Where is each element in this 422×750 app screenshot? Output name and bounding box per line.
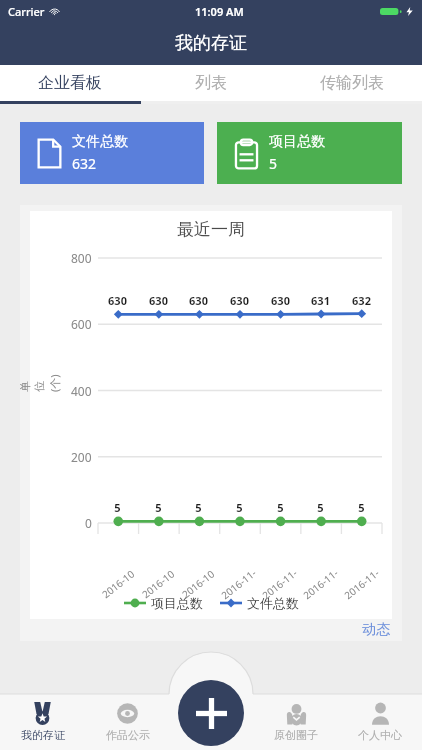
- staticText: 2016-11-02: [259, 566, 300, 602]
- staticText: 5: [269, 154, 278, 173]
- staticText: 企业看板: [38, 73, 102, 93]
- button[interactable]: Add new: [178, 680, 244, 746]
- staticText: 632: [352, 293, 371, 308]
- button[interactable]: 企业看板: [0, 65, 140, 101]
- button[interactable]: 列表: [140, 65, 281, 101]
- staticText: 2016-10-29: [98, 566, 138, 602]
- staticText: 800: [71, 250, 92, 266]
- staticText: 5: [195, 500, 202, 515]
- staticText: 5: [155, 500, 162, 515]
- staticText: 200: [71, 449, 92, 465]
- staticText: 630: [271, 293, 290, 308]
- staticText: 5: [317, 500, 324, 515]
- staticText: 个人中心: [358, 728, 402, 742]
- staticText: 传输列表: [320, 73, 384, 93]
- staticText: 2016-10-30: [138, 566, 178, 602]
- staticText: 630: [149, 293, 168, 308]
- staticText: 原创圈子: [274, 728, 318, 742]
- staticText: 文件总数: [72, 133, 128, 151]
- staticText: 632: [72, 154, 97, 173]
- staticText: 5: [358, 500, 365, 515]
- staticText: 项目总数: [151, 595, 203, 611]
- staticText: 最近一周: [177, 219, 245, 240]
- staticText: 2016-10-31: [178, 566, 218, 602]
- button[interactable]: 个人中心: [338, 694, 422, 750]
- staticText: 400: [71, 383, 92, 399]
- staticText: 2016-11-04: [341, 566, 382, 602]
- staticText: 文件总数: [247, 595, 299, 611]
- staticText: 2016-11-01: [218, 566, 259, 602]
- button[interactable]: 文件总数: [20, 122, 204, 184]
- staticText: 630: [230, 293, 249, 308]
- staticText: 5: [277, 500, 284, 515]
- staticText: 600: [71, 316, 92, 332]
- staticText: 列表: [195, 73, 227, 93]
- staticText: 630: [189, 293, 208, 308]
- button[interactable]: 原创圈子: [254, 694, 338, 750]
- staticText: 630: [108, 293, 127, 308]
- button[interactable]: 作品公示: [85, 694, 170, 750]
- staticText: 631: [311, 293, 330, 308]
- staticText: 我的存证: [175, 32, 247, 55]
- staticText: 0: [85, 515, 92, 531]
- staticText: 5: [114, 500, 121, 515]
- staticText: 2016-11-03: [300, 566, 341, 602]
- button[interactable]: 动态: [362, 621, 390, 639]
- staticText: 5: [236, 500, 243, 515]
- button[interactable]: 项目总数: [217, 122, 402, 184]
- staticText: 11:09 AM: [195, 4, 244, 19]
- button[interactable]: 我的存证: [0, 694, 85, 750]
- staticText: 项目总数: [269, 133, 325, 151]
- staticText: 单位(个): [18, 372, 62, 392]
- button[interactable]: 传输列表: [281, 65, 422, 101]
- staticText: 作品公示: [106, 728, 150, 742]
- staticText: 我的存证: [21, 728, 65, 742]
- staticText: Carrier: [8, 4, 45, 19]
